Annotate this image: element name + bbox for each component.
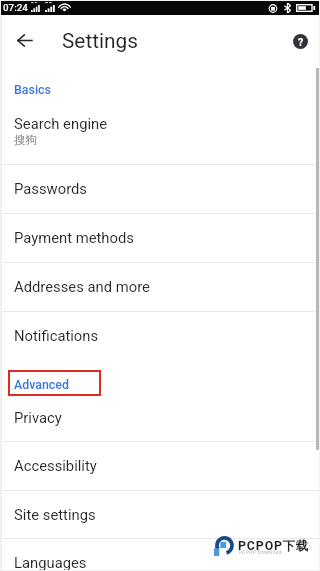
button[interactable]: Languages xyxy=(0,538,320,571)
staticText: Languages xyxy=(14,554,87,571)
button[interactable]: Accessibility xyxy=(0,441,320,490)
staticText: PCPOP Download xyxy=(239,550,282,555)
staticText: Site settings xyxy=(14,506,96,523)
button[interactable]: Payment methods xyxy=(0,213,320,262)
button[interactable]: Help xyxy=(286,27,314,55)
staticText: PCPOP下载 xyxy=(238,538,310,554)
staticText: Advanced xyxy=(14,377,69,392)
button[interactable]: Notifications xyxy=(0,311,320,360)
staticText: Search engine xyxy=(14,115,108,132)
button[interactable]: Site settings xyxy=(0,490,320,539)
staticText: Addresses and more xyxy=(14,278,150,295)
staticText: ? xyxy=(298,36,304,48)
button[interactable]: Back xyxy=(8,26,40,54)
staticText: 07:24 xyxy=(3,2,28,13)
staticText: 搜狗 xyxy=(14,133,37,147)
staticText: Privacy xyxy=(14,409,62,426)
button[interactable]: Passwords xyxy=(0,164,320,213)
staticText: Basics xyxy=(14,82,51,97)
button[interactable]: Privacy xyxy=(0,393,320,442)
staticText: Accessibility xyxy=(14,457,97,474)
staticText: Passwords xyxy=(14,180,87,197)
button[interactable]: Addresses and more xyxy=(0,262,320,311)
staticText: Settings xyxy=(62,29,138,53)
staticText: Payment methods xyxy=(14,229,134,246)
staticText: Notifications xyxy=(14,327,99,344)
button[interactable]: Search engine xyxy=(0,105,320,164)
